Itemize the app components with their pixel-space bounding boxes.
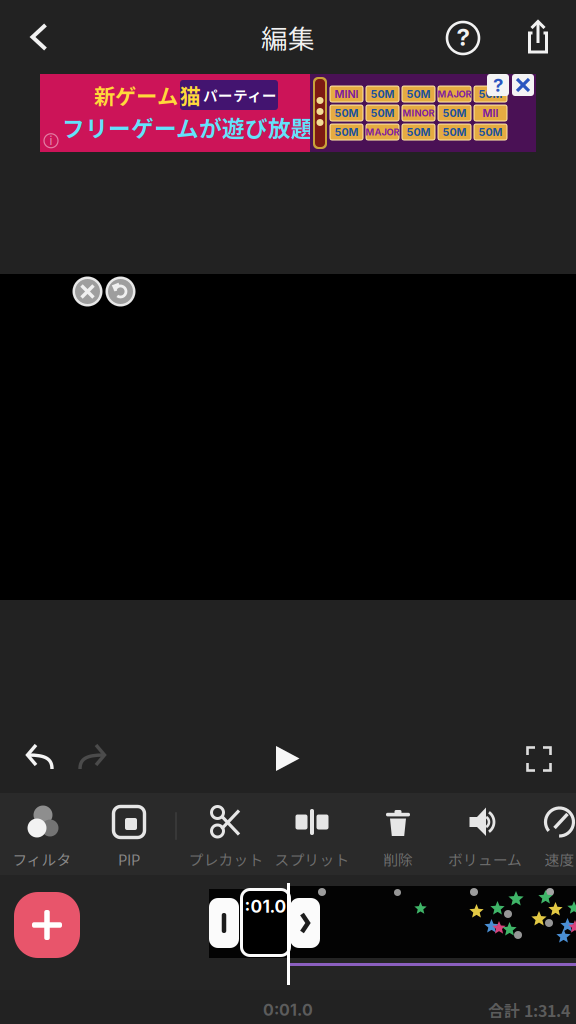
staticText: 50M <box>334 125 358 138</box>
button[interactable]: 元に戻す <box>14 726 66 786</box>
button[interactable]: 戻る <box>17 15 61 59</box>
staticText: ? <box>456 22 469 51</box>
staticText: 削除 <box>383 848 413 870</box>
staticText: :01.0 <box>244 896 286 917</box>
staticText: フリーゲームが遊び放題 <box>62 111 314 143</box>
button[interactable]: クリップを追加 <box>14 892 80 958</box>
staticText: 50M <box>442 106 466 119</box>
staticText: ? <box>493 74 503 96</box>
staticText: スプリット <box>274 848 349 870</box>
button[interactable]: PIP <box>86 793 172 875</box>
button[interactable]: 削除 <box>356 793 440 875</box>
staticText: ボリューム <box>448 848 522 870</box>
staticText: 猫 <box>179 80 200 110</box>
button[interactable]: フィルタ <box>0 793 84 875</box>
button[interactable]: 広告 <box>40 74 536 152</box>
staticText: 合計 1:31.4 <box>488 998 570 1022</box>
button[interactable]: 広告について <box>487 74 509 96</box>
staticText: 編集 <box>261 18 315 56</box>
staticText: プレカット <box>188 848 263 870</box>
staticText: i <box>49 133 52 148</box>
staticText: MAJOR <box>365 126 399 138</box>
button[interactable]: 全画面 <box>514 726 564 792</box>
button[interactable]: プレカット <box>180 793 272 875</box>
staticText: 50M <box>406 125 430 138</box>
staticText: MINOR <box>402 107 434 119</box>
staticText: パーティー <box>203 84 277 106</box>
staticText: MAJOR <box>437 88 471 100</box>
staticText: 50M <box>442 125 466 138</box>
staticText: MII <box>482 106 498 119</box>
staticText: 0:01.0 <box>263 1000 313 1020</box>
button[interactable]: 削除 <box>72 275 103 308</box>
staticText: 50M <box>478 87 502 100</box>
staticText: 新ゲーム <box>94 80 178 110</box>
staticText: 50M <box>478 125 502 138</box>
button[interactable]: 再生 <box>258 726 318 792</box>
staticText: PIP <box>118 848 140 870</box>
staticText: 50M <box>334 106 358 119</box>
staticText: MINI <box>334 87 358 100</box>
button[interactable]: ヘルプ <box>441 16 485 60</box>
button[interactable]: 広告を閉じる <box>512 74 534 96</box>
staticText: 50M <box>370 106 394 119</box>
staticText: フィルタ <box>12 848 71 870</box>
staticText: 速度 <box>544 848 574 870</box>
staticText: 50M <box>370 87 394 100</box>
button[interactable]: 速度 <box>520 793 576 875</box>
button[interactable]: スプリット <box>269 793 355 875</box>
button[interactable]: やり直す <box>66 726 118 786</box>
button[interactable]: ボリューム <box>440 793 530 875</box>
button[interactable]: リセット <box>105 275 136 308</box>
button[interactable]: 共有 <box>515 15 561 59</box>
staticText: 50M <box>406 87 430 100</box>
